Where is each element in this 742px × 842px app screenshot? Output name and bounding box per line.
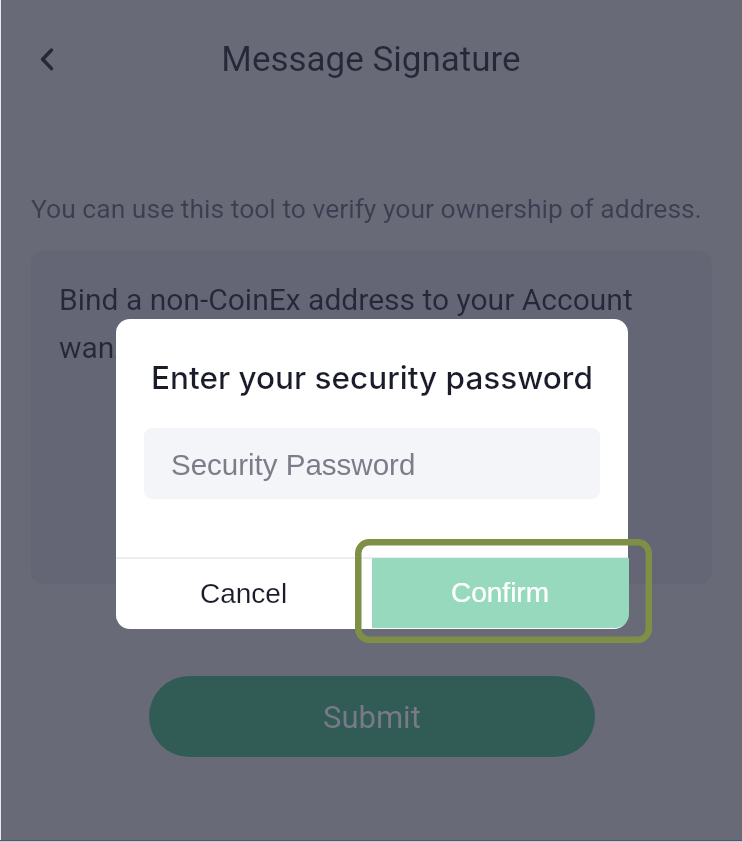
- button[interactable]: Cancel: [116, 558, 372, 629]
- staticText: Bind a non-CoinEx address to your Accoun…: [59, 282, 659, 365]
- button[interactable]: Back: [16, 29, 76, 89]
- staticText: Confirm: [451, 577, 550, 608]
- button[interactable]: Submit: [149, 676, 595, 757]
- staticText: You can use this tool to verify your own…: [31, 193, 702, 224]
- staticText: Enter your security password: [116, 358, 628, 396]
- staticText: Submit: [323, 699, 421, 735]
- staticText: Message Signature: [0, 39, 742, 80]
- button[interactable]: Security Password: [144, 428, 600, 499]
- button[interactable]: Confirm: [372, 558, 629, 628]
- staticText: Cancel: [200, 578, 288, 609]
- staticText: Security Password: [171, 448, 416, 481]
